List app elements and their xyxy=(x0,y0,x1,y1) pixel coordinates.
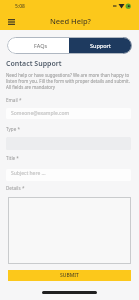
staticText: Someone@example.com xyxy=(11,110,70,117)
button[interactable]: Subject here ... xyxy=(6,169,131,181)
button[interactable] xyxy=(8,197,131,264)
staticText: Type * xyxy=(6,126,20,132)
button[interactable]: FAQs xyxy=(7,37,69,54)
staticText: SUBMIT xyxy=(60,272,79,279)
staticText: Subject here ... xyxy=(11,170,46,177)
button[interactable]: SUBMIT xyxy=(8,270,131,281)
button[interactable]: Support xyxy=(69,37,132,54)
button[interactable]: Someone@example.com xyxy=(6,108,131,119)
staticText: Details * xyxy=(6,185,25,191)
staticText: Support xyxy=(90,42,111,49)
button[interactable]: Menu xyxy=(6,16,17,27)
staticText: Contact Support xyxy=(6,59,62,69)
staticText: Need help or have suggestions? We are mo… xyxy=(6,72,131,90)
staticText: Email * xyxy=(6,97,22,103)
staticText: Need Help? xyxy=(50,16,91,26)
staticText: Title * xyxy=(6,155,19,161)
staticText: FAQs xyxy=(34,42,48,49)
staticText: 5:08 xyxy=(15,3,25,10)
